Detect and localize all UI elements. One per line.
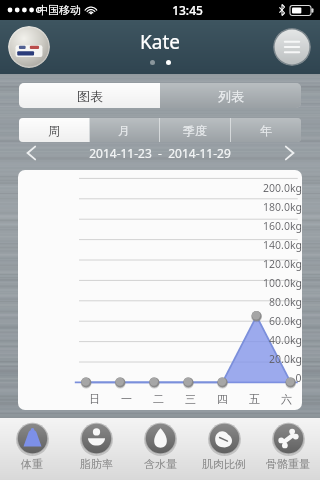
button[interactable]: 骨骼重量 bbox=[256, 422, 320, 480]
button[interactable]: Profile bbox=[8, 26, 50, 68]
staticText: 脂肪率 bbox=[80, 457, 113, 471]
button[interactable]: 季度 bbox=[159, 118, 230, 142]
button[interactable]: 含水量 bbox=[128, 422, 192, 480]
button[interactable]: Previous bbox=[20, 142, 42, 164]
staticText: 骨骼重量 bbox=[266, 457, 310, 471]
staticText: 图表 bbox=[77, 88, 103, 104]
staticText: 二 bbox=[153, 392, 164, 406]
staticText: 周 bbox=[48, 123, 60, 138]
button[interactable]: Menu bbox=[273, 28, 311, 66]
staticText: 60.0kg bbox=[269, 314, 302, 328]
staticText: 三 bbox=[185, 392, 196, 406]
staticText: 80.0kg bbox=[269, 295, 302, 309]
staticText: 月 bbox=[118, 123, 130, 138]
button[interactable]: 周 bbox=[19, 118, 89, 142]
button[interactable]: 年 bbox=[230, 118, 301, 142]
staticText: 年 bbox=[260, 123, 272, 138]
button[interactable]: Next bbox=[278, 142, 300, 164]
staticText: 肌肉比例 bbox=[202, 457, 246, 471]
button[interactable]: 体重 bbox=[0, 422, 64, 480]
staticText: 含水量 bbox=[144, 457, 177, 471]
staticText: 四 bbox=[217, 392, 228, 406]
staticText: 140.0kg bbox=[263, 238, 302, 252]
staticText: 160.0kg bbox=[263, 219, 302, 233]
button[interactable]: 肌肉比例 bbox=[192, 422, 256, 480]
staticText: 日 bbox=[89, 392, 100, 406]
staticText: Kate bbox=[140, 29, 180, 55]
staticText: 0 bbox=[295, 371, 302, 385]
staticText: 中国移动 bbox=[37, 3, 81, 17]
staticText: 200.0kg bbox=[263, 181, 302, 195]
button[interactable]: 图表 bbox=[19, 83, 160, 108]
button[interactable]: 脂肪率 bbox=[64, 422, 128, 480]
staticText: 2014-11-23 - 2014-11-29 bbox=[89, 145, 231, 161]
button[interactable]: 列表 bbox=[160, 83, 301, 108]
staticText: 五 bbox=[249, 392, 260, 406]
staticText: 列表 bbox=[218, 88, 244, 104]
staticText: 180.0kg bbox=[263, 200, 302, 214]
staticText: 六 bbox=[281, 392, 292, 406]
staticText: 120.0kg bbox=[263, 257, 302, 271]
staticText: 一 bbox=[121, 392, 132, 406]
staticText: 40.0kg bbox=[269, 333, 302, 347]
staticText: 100.0kg bbox=[263, 276, 302, 290]
staticText: 季度 bbox=[183, 123, 207, 138]
button[interactable]: 月 bbox=[89, 118, 159, 142]
staticText: 20.0kg bbox=[269, 352, 302, 366]
staticText: 13:45 bbox=[172, 2, 203, 18]
staticText: 体重 bbox=[21, 457, 43, 471]
